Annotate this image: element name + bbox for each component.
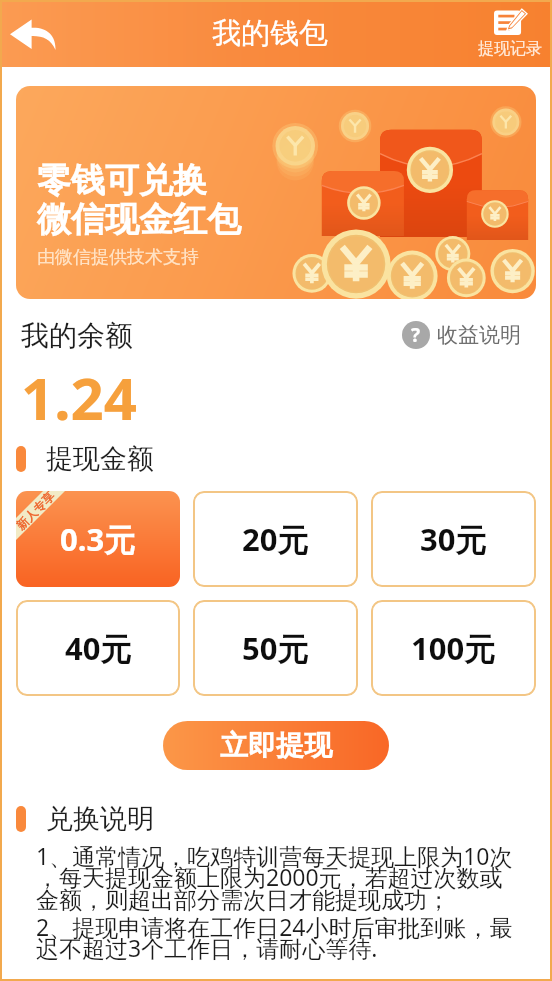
staticText: 提现金额 — [46, 442, 154, 476]
staticText: 新人专享 — [16, 491, 57, 533]
button[interactable]: Back — [4, 9, 62, 59]
staticText: 1、通常情况，吃鸡特训营每天提现上限为10次 ，每天提现金额上限为2000元，若… — [36, 840, 513, 915]
staticText: 兑换说明 — [46, 802, 154, 836]
staticText: 1.24 — [21, 358, 137, 437]
staticText: 提现记录 — [478, 39, 542, 59]
staticText: 我的余额 — [21, 318, 133, 353]
button[interactable]: 20元 — [193, 491, 358, 587]
staticText: 我的钱包 — [212, 15, 328, 52]
button[interactable]: 0.3元 — [16, 491, 180, 587]
staticText: 零钱可兑换 微信现金红包 — [37, 159, 241, 241]
staticText: 立即提现 — [220, 728, 332, 763]
button[interactable]: 立即提现 — [163, 721, 389, 770]
staticText: 0.3元 — [60, 518, 136, 560]
button[interactable]: 30元 — [371, 491, 536, 587]
staticText: ? — [411, 322, 421, 348]
staticText: 2、提现申请将在工作日24小时后审批到账，最 迟不超过3个工作日，请耐心等待. — [36, 911, 513, 964]
staticText: 20元 — [242, 518, 309, 560]
button[interactable]: 50元 — [193, 600, 358, 696]
staticText: 收益说明 — [437, 322, 521, 348]
staticText: 50元 — [242, 627, 309, 669]
button[interactable]: ? — [402, 321, 521, 349]
button[interactable]: 零钱可兑换 微信现金红包 — [16, 86, 536, 299]
staticText: 由微信提供技术支持 — [37, 246, 199, 269]
button[interactable]: 100元 — [371, 600, 536, 696]
button[interactable]: 提现记录 — [478, 8, 542, 59]
staticText: 40元 — [65, 627, 132, 669]
staticText: 30元 — [420, 518, 487, 560]
button[interactable]: 40元 — [16, 600, 180, 696]
staticText: 100元 — [411, 627, 496, 669]
